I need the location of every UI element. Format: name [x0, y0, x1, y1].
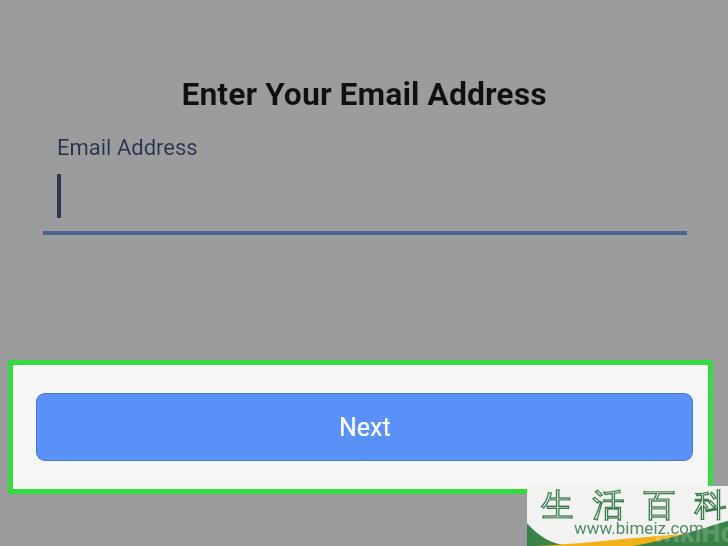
staticText: 生活百科 — [532, 485, 728, 525]
staticText: wikiHow — [653, 517, 728, 546]
staticText: Email Address — [57, 135, 198, 161]
button[interactable]: Next — [36, 393, 693, 461]
button[interactable]: Email Address input field — [43, 128, 687, 235]
staticText: www.bimeiz.com — [574, 518, 704, 538]
staticText: Enter Your Email Address — [0, 75, 728, 113]
staticText: Next — [339, 413, 391, 442]
